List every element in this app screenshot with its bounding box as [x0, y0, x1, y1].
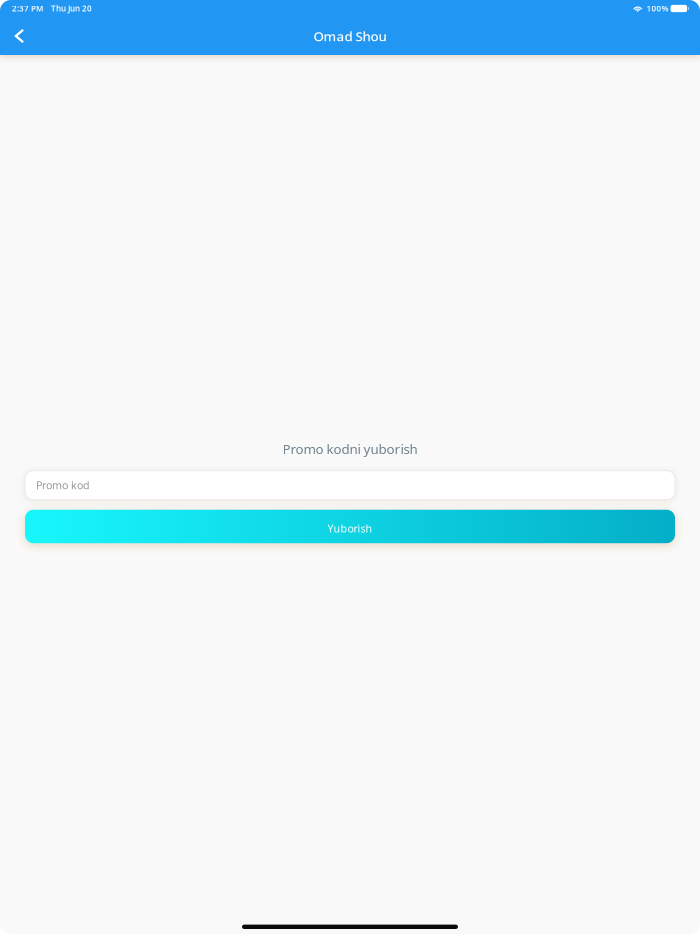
staticText: Promo kodni yuborish [282, 440, 417, 458]
staticText: Thu Jun 20 [51, 3, 92, 14]
button[interactable]: Promo kod [25, 471, 675, 500]
staticText: 2:37 PM [12, 3, 43, 14]
staticText: Yuborish [327, 521, 372, 536]
button[interactable]: Yuborish [25, 510, 675, 543]
staticText: Promo kod [36, 478, 90, 492]
button[interactable]: Back [0, 18, 39, 54]
staticText: 100% [647, 3, 669, 14]
staticText: Omad Shou [313, 27, 386, 45]
